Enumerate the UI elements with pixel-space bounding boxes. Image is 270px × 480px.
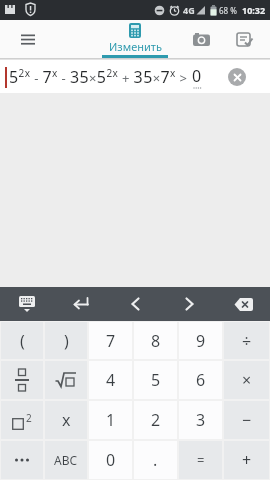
button[interactable]: +	[224, 441, 269, 479]
button[interactable]: 4	[89, 361, 132, 399]
staticText: 5	[151, 369, 161, 391]
button[interactable]	[216, 287, 270, 321]
button[interactable]: −	[224, 401, 269, 439]
button[interactable]	[54, 287, 108, 321]
staticText: =	[197, 451, 205, 469]
button[interactable]: 2	[1, 401, 43, 439]
staticText: −	[242, 409, 252, 431]
button[interactable]: 9	[179, 322, 222, 359]
button[interactable]: ÷	[224, 322, 269, 359]
button[interactable]	[45, 361, 87, 399]
staticText: Изменить	[109, 39, 162, 54]
button[interactable]: (	[1, 322, 43, 359]
button[interactable]	[0, 287, 54, 321]
staticText: 4G	[183, 4, 195, 16]
button[interactable]: )	[45, 322, 87, 359]
staticText: .	[153, 449, 158, 471]
staticText: +	[242, 449, 252, 471]
staticText: (	[20, 330, 25, 352]
button[interactable]: Изменить	[102, 20, 168, 58]
button[interactable]: .	[134, 441, 177, 479]
button[interactable]	[108, 287, 162, 321]
button[interactable]: 1	[89, 401, 132, 439]
staticText: 8	[151, 330, 161, 352]
staticText: ABC	[54, 452, 78, 468]
staticText: 4	[106, 369, 116, 391]
button[interactable]: =	[179, 441, 222, 479]
button[interactable]: 7	[89, 322, 132, 359]
button[interactable]	[232, 26, 258, 52]
staticText: 68 %	[219, 5, 237, 16]
button[interactable]: 8	[134, 322, 177, 359]
staticText: 52x - 7x - 35×52x + 35×7x >	[9, 66, 192, 88]
staticText: 0	[106, 449, 116, 471]
staticText: 6	[196, 369, 206, 391]
button[interactable]	[14, 25, 42, 53]
button[interactable]	[1, 441, 43, 479]
button[interactable]: 2	[134, 401, 177, 439]
staticText: 9	[196, 330, 206, 352]
button[interactable]: 3	[179, 401, 222, 439]
button[interactable]	[228, 68, 246, 86]
button[interactable]: x	[45, 401, 87, 439]
button[interactable]	[1, 361, 43, 399]
staticText: 10:32	[242, 4, 266, 16]
button[interactable]: 5	[134, 361, 177, 399]
button[interactable]: ABC	[45, 441, 87, 479]
staticText: 0	[192, 65, 202, 87]
button[interactable]	[162, 287, 216, 321]
staticText: 1	[106, 409, 116, 431]
staticText: 2	[26, 411, 32, 425]
staticText: ÷	[242, 330, 252, 352]
staticText: 3	[196, 409, 206, 431]
button[interactable]: 0	[89, 441, 132, 479]
staticText: 7	[106, 330, 116, 352]
staticText: )	[64, 330, 69, 352]
button[interactable]	[188, 26, 214, 52]
staticText: x	[62, 409, 71, 431]
staticText: ×	[242, 369, 252, 391]
staticText: 2	[151, 409, 161, 431]
button[interactable]: ×	[224, 361, 269, 399]
button[interactable]: 6	[179, 361, 222, 399]
